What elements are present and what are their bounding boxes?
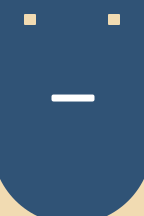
button[interactable]: Profile bbox=[108, 14, 120, 25]
button[interactable]: Menu bbox=[24, 14, 36, 25]
